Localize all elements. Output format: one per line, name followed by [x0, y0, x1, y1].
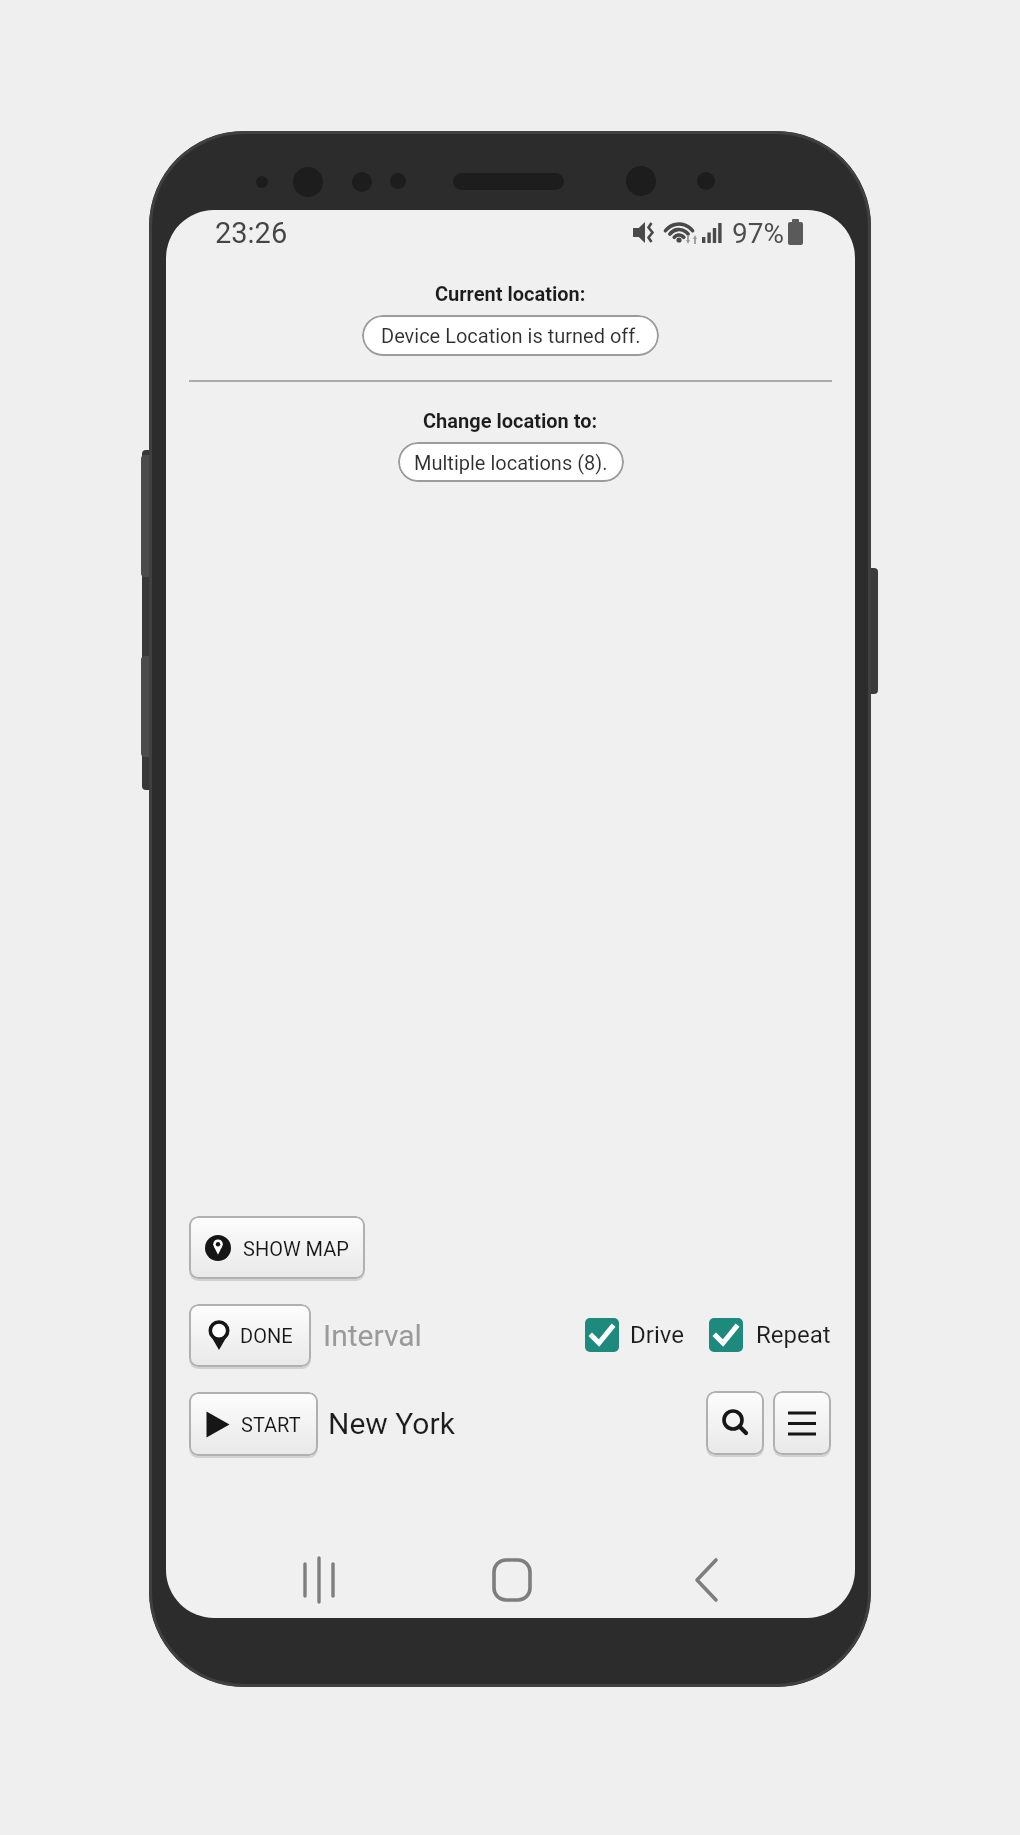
staticText: Change location to: [423, 409, 598, 432]
staticText: Device Location is turned off. [381, 324, 641, 347]
button[interactable] [585, 1318, 619, 1352]
staticText: Drive [630, 1321, 684, 1349]
button[interactable] [709, 1318, 743, 1352]
staticText: Current location: [435, 282, 586, 305]
button[interactable]: Device Location is turned off. [362, 315, 659, 356]
staticText: DONE [240, 1324, 293, 1347]
button[interactable]: SHOW MAP [189, 1216, 365, 1279]
button[interactable]: Multiple locations (8). [398, 442, 624, 482]
staticText: 23:26 [215, 216, 288, 250]
staticText: New York [328, 1406, 455, 1441]
button[interactable]: START [189, 1392, 318, 1456]
staticText: START [241, 1413, 301, 1436]
staticText: Multiple locations (8). [414, 451, 608, 474]
staticText: 97% [732, 217, 784, 250]
staticText: SHOW MAP [243, 1237, 349, 1260]
staticText: Interval [323, 1318, 422, 1353]
staticText: Repeat [756, 1321, 831, 1349]
button[interactable] [773, 1391, 831, 1455]
button[interactable] [706, 1391, 764, 1455]
button[interactable]: DONE [189, 1304, 311, 1367]
